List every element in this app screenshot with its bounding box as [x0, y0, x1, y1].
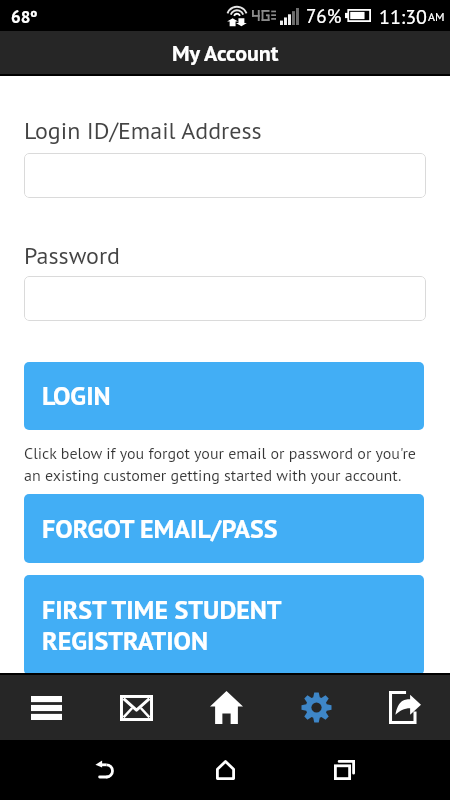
staticText: Login ID/Email Address	[24, 115, 262, 146]
button[interactable]: LOGIN	[24, 362, 424, 430]
button[interactable]: FORGOT EMAIL/PASS	[24, 494, 424, 563]
staticText: 11:30	[379, 4, 427, 30]
staticText: 76%	[306, 4, 342, 29]
staticText: FORGOT EMAIL/PASS	[42, 512, 278, 546]
staticText: Click below if you forgot your email or …	[24, 443, 426, 485]
button[interactable]: FIRST TIME STUDENT REGISTRATION	[24, 575, 424, 675]
button[interactable]	[24, 153, 426, 198]
button[interactable]	[24, 276, 426, 321]
button[interactable]: Home	[181, 675, 271, 740]
staticText: LOGIN	[42, 379, 111, 413]
button[interactable]: Settings	[271, 675, 361, 740]
button[interactable]: Home	[185, 740, 265, 800]
staticText: Password	[24, 240, 120, 271]
staticText: FIRST TIME STUDENT REGISTRATION	[42, 593, 282, 658]
button[interactable]: Share	[360, 675, 450, 740]
button[interactable]: Back	[65, 740, 145, 800]
staticText: My Account	[172, 39, 279, 67]
button[interactable]: Mail	[91, 675, 181, 740]
staticText: AM	[428, 9, 445, 25]
button[interactable]: Menu	[1, 675, 91, 740]
button[interactable]: Recents	[304, 740, 384, 800]
staticText: 68º	[11, 6, 38, 28]
